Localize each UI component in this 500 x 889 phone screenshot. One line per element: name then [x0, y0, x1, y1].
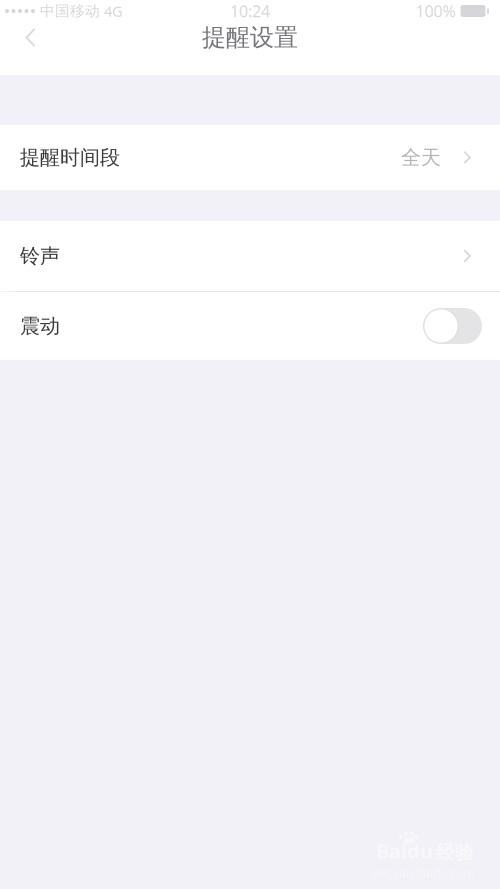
staticText: 提醒时间段	[20, 145, 120, 170]
staticText: 中国移动	[40, 2, 100, 20]
staticText: 100%	[415, 0, 455, 22]
staticText: 4G	[104, 1, 123, 21]
staticText: 铃声	[20, 244, 60, 268]
button[interactable]: Back	[0, 15, 60, 59]
staticText: 10:24	[230, 0, 270, 22]
button[interactable]: 铃声	[0, 221, 500, 291]
staticText: 提醒设置	[202, 23, 298, 52]
staticText: 全天	[401, 145, 441, 170]
staticText: 震动	[20, 314, 60, 338]
button[interactable]: 提醒时间段	[0, 125, 500, 190]
button[interactable]: Vibration	[423, 308, 482, 344]
